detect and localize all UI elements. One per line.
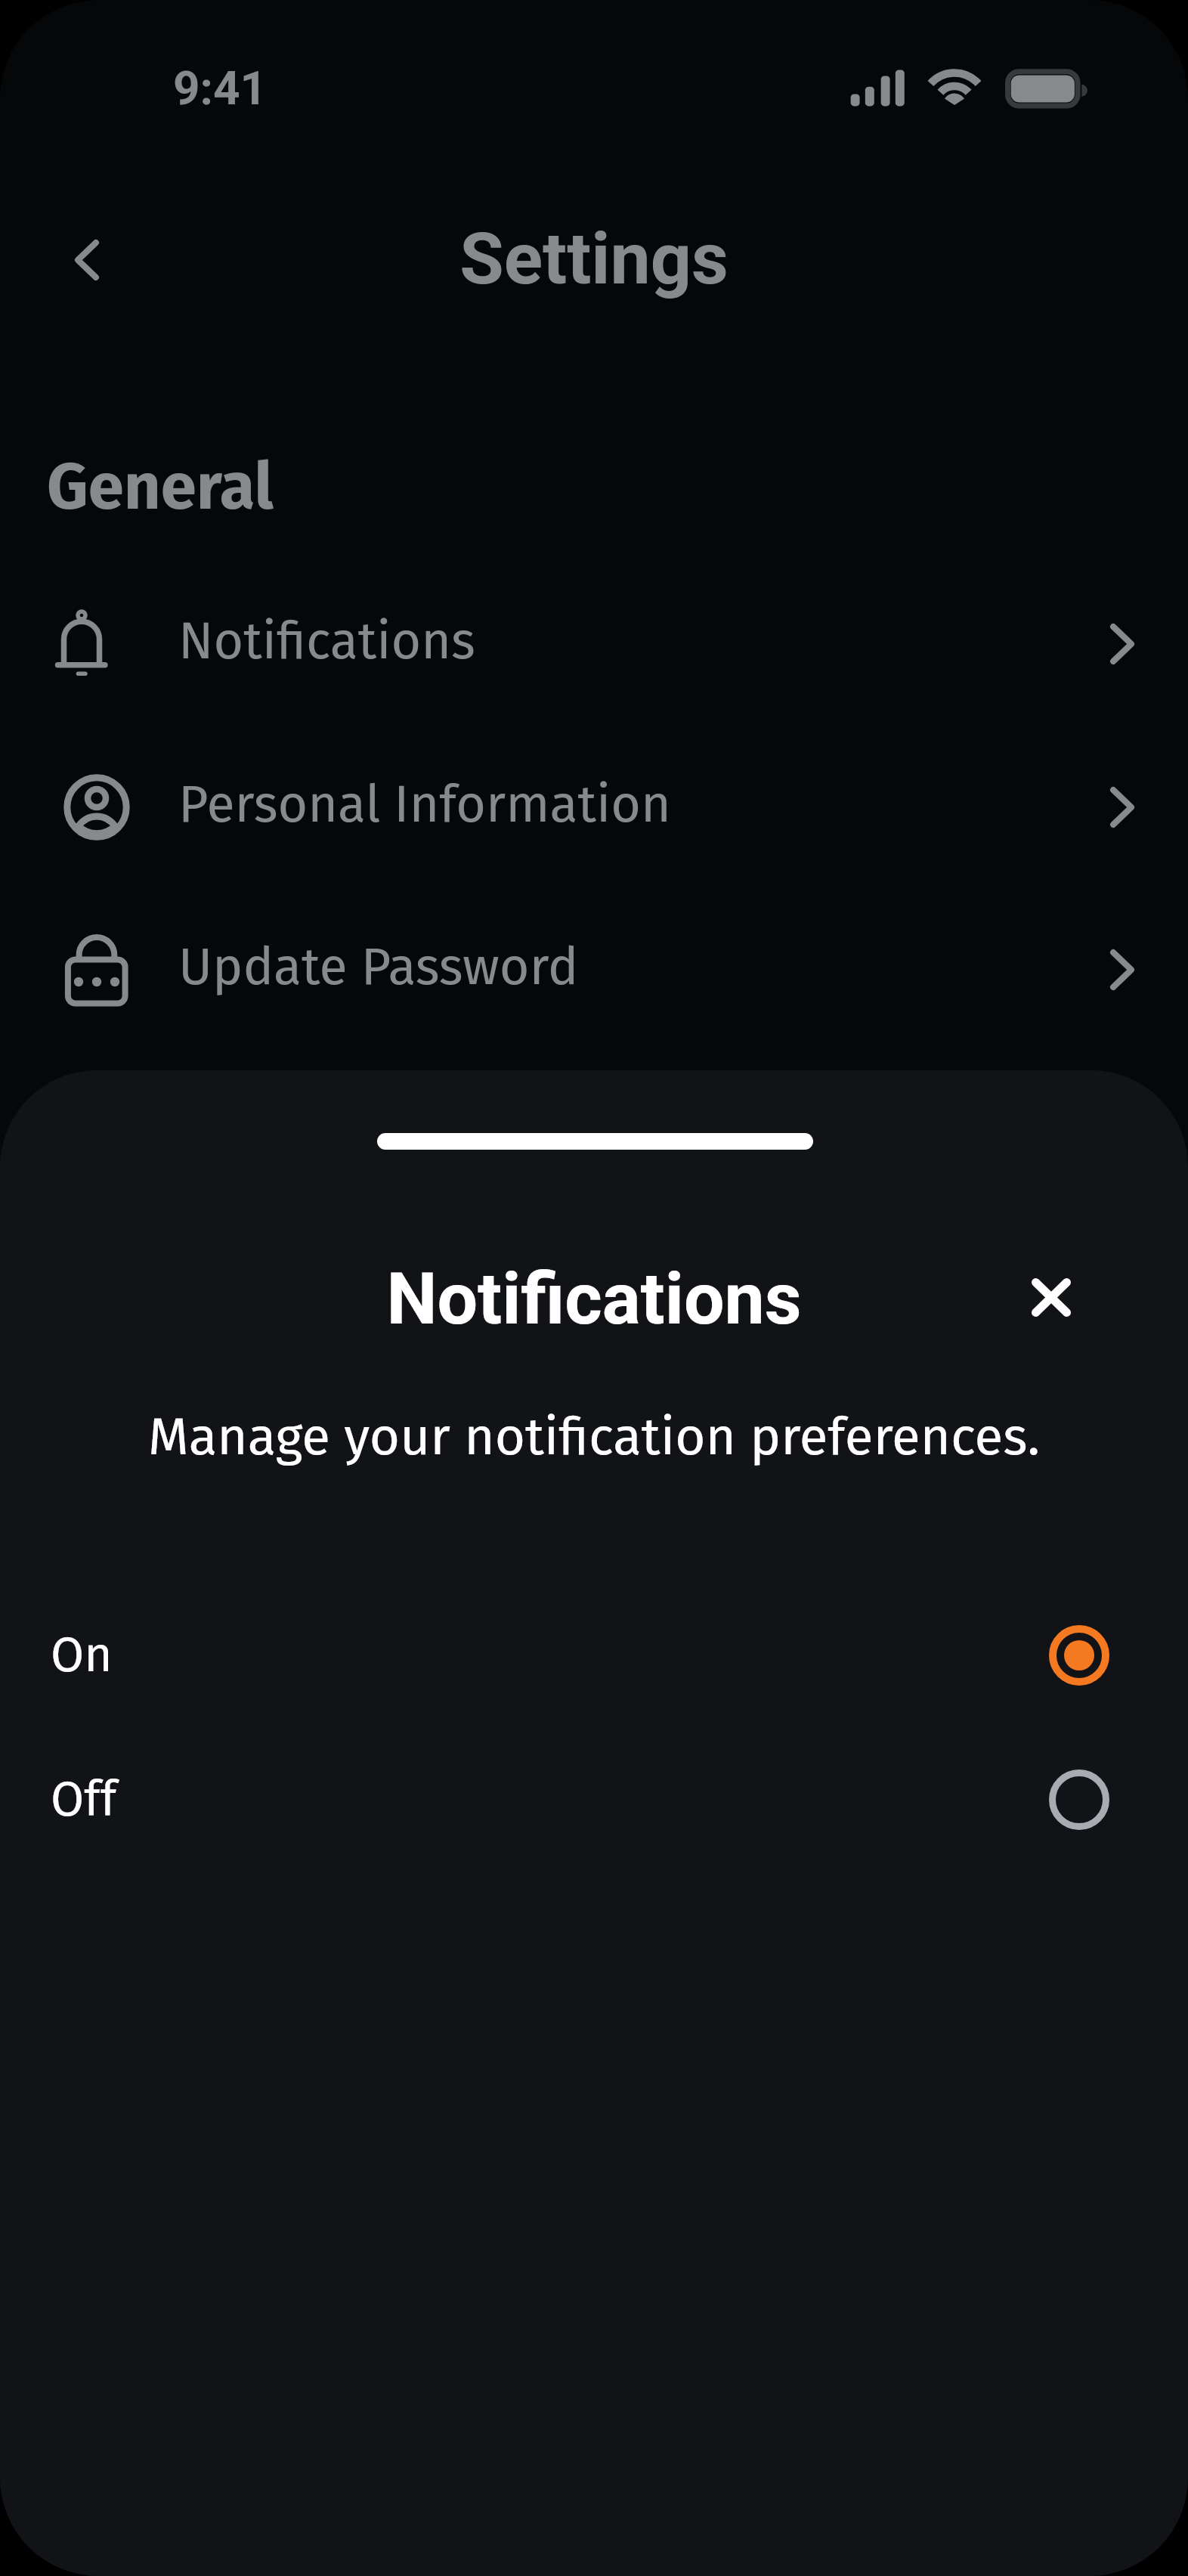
staticText: Update Password — [178, 936, 579, 998]
button[interactable]: Off — [0, 1743, 1188, 1856]
staticText: Notifications — [178, 610, 475, 672]
button[interactable]: Close — [1005, 1251, 1097, 1343]
button[interactable]: Back — [30, 203, 144, 317]
button[interactable]: Drag handle — [377, 1133, 813, 1150]
staticText: On — [51, 1626, 113, 1684]
staticText: Manage your notification preferences. — [0, 1405, 1188, 1468]
staticText: Settings — [0, 217, 1188, 301]
button[interactable]: Notifications — [0, 568, 1188, 720]
staticText: Off — [51, 1770, 117, 1828]
staticText: Personal Information — [178, 773, 671, 835]
button[interactable]: Personal Information — [0, 732, 1188, 883]
staticText: 9:41 — [173, 60, 268, 116]
staticText: General — [47, 449, 274, 526]
staticText: Notifications — [0, 1257, 1188, 1341]
button[interactable]: Update Password — [0, 894, 1188, 1045]
button[interactable]: On — [0, 1599, 1188, 1712]
